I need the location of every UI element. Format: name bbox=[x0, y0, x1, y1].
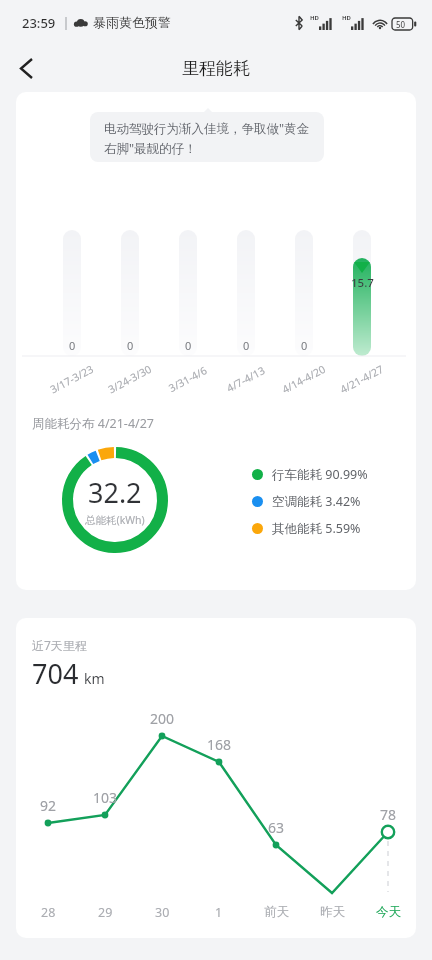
button[interactable]: 今天 bbox=[366, 902, 410, 922]
staticText: 103 bbox=[93, 788, 118, 807]
staticText: HD bbox=[310, 14, 319, 22]
button[interactable]: 29 bbox=[83, 902, 127, 922]
staticText: 4/14-4/20 bbox=[279, 362, 328, 396]
staticText: 29 bbox=[98, 904, 113, 921]
staticText: 3/17-3/23 bbox=[47, 362, 96, 396]
button[interactable]: 昨天 bbox=[310, 902, 354, 922]
staticText: 1 bbox=[215, 904, 223, 921]
staticText: 空调能耗 3.42% bbox=[272, 493, 361, 510]
button[interactable]: 其他能耗 5.59% bbox=[252, 517, 361, 539]
staticText: 200 bbox=[150, 709, 175, 728]
staticText: 15.7 bbox=[351, 275, 374, 291]
button[interactable]: 28 bbox=[26, 902, 70, 922]
staticText: 0 bbox=[185, 338, 192, 353]
staticText: 30 bbox=[155, 904, 170, 921]
staticText: 行车能耗 90.99% bbox=[272, 466, 368, 483]
staticText: km bbox=[84, 669, 105, 688]
staticText: 28 bbox=[41, 904, 56, 921]
staticText: HD bbox=[342, 14, 351, 22]
staticText: 78 bbox=[380, 805, 397, 824]
staticText: 今天 bbox=[376, 904, 401, 920]
staticText: 0 bbox=[127, 338, 134, 353]
staticText: 其他能耗 5.59% bbox=[272, 520, 361, 537]
staticText: 4/7-4/13 bbox=[224, 363, 268, 395]
button[interactable]: 30 bbox=[140, 902, 184, 922]
staticText: 电动驾驶行为渐入佳境，争取做"黄金右脚"最靓的仔！ bbox=[104, 120, 310, 157]
button[interactable]: 前天 bbox=[254, 902, 298, 922]
staticText: 63 bbox=[268, 818, 285, 837]
staticText: 里程能耗 bbox=[182, 58, 250, 79]
staticText: 50 bbox=[396, 19, 406, 30]
staticText: 704 bbox=[32, 655, 79, 692]
staticText: 32.2 bbox=[88, 474, 142, 511]
button[interactable]: Back bbox=[8, 50, 44, 86]
staticText: 3/31-4/6 bbox=[166, 363, 210, 395]
staticText: 周能耗分布 4/21-4/27 bbox=[32, 415, 154, 432]
staticText: 23:59 bbox=[22, 14, 56, 32]
staticText: 4/21-4/27 bbox=[337, 362, 386, 396]
button[interactable]: 行车能耗 90.99% bbox=[252, 463, 368, 485]
staticText: 0 bbox=[243, 338, 250, 353]
staticText: 92 bbox=[40, 796, 57, 815]
staticText: 昨天 bbox=[320, 904, 345, 920]
staticText: 总能耗(kWh) bbox=[85, 513, 145, 527]
staticText: 暴雨黄色预警 bbox=[93, 14, 171, 30]
staticText: 前天 bbox=[264, 904, 289, 920]
staticText: 近7天里程 bbox=[32, 637, 87, 653]
staticText: 0 bbox=[301, 338, 308, 353]
button[interactable]: 1 bbox=[197, 902, 241, 922]
button[interactable]: 空调能耗 3.42% bbox=[252, 490, 361, 512]
staticText: 168 bbox=[207, 735, 232, 754]
staticText: 3/24-3/30 bbox=[105, 362, 154, 396]
staticText: 0 bbox=[69, 338, 76, 353]
